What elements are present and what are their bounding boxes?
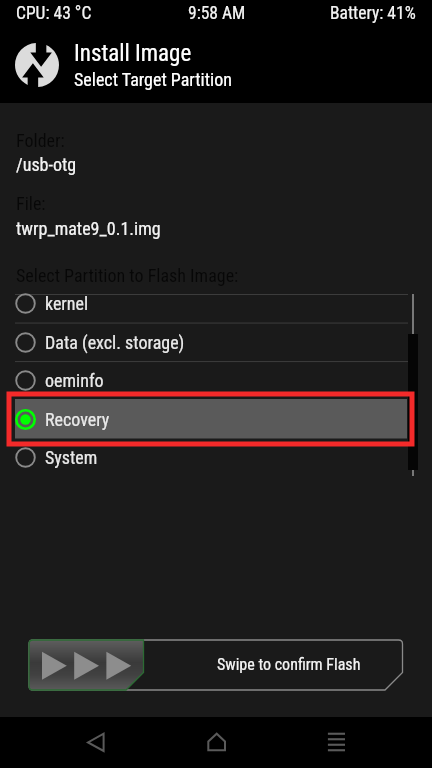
staticText: Battery: 41%: [330, 3, 416, 24]
staticText: Folder:: [16, 130, 65, 151]
staticText: System: [45, 447, 98, 468]
button[interactable]: Data (excl. storage): [0, 323, 432, 362]
staticText: CPU: 43 °C: [16, 3, 92, 24]
button[interactable]: kernel: [0, 284, 432, 323]
staticText: Select Partition to Flash Image:: [16, 265, 239, 286]
staticText: Data (excl. storage): [45, 332, 185, 353]
staticText: Recovery: [45, 409, 110, 430]
staticText: Select Target Partition: [74, 69, 232, 90]
button[interactable]: Menu: [312, 717, 360, 765]
staticText: Install Image: [74, 40, 192, 67]
button[interactable]: Swipe to confirm Flash: [0, 0, 432, 768]
staticText: Swipe to confirm Flash: [217, 655, 361, 674]
button[interactable]: Recovery: [0, 400, 432, 439]
staticText: oeminfo: [45, 370, 104, 391]
button[interactable]: Back: [72, 717, 120, 765]
button[interactable]: Home: [192, 717, 240, 765]
staticText: kernel: [45, 293, 89, 314]
staticText: /usb-otg: [16, 154, 77, 175]
staticText: twrp_mate9_0.1.img: [16, 218, 161, 239]
staticText: File:: [16, 193, 46, 214]
button[interactable]: oeminfo: [0, 361, 432, 400]
button[interactable]: System: [0, 438, 432, 477]
staticText: 9:58 AM: [188, 3, 246, 24]
